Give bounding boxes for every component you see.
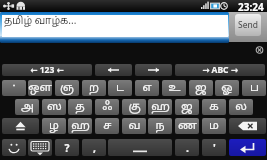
staticText: த <box>75 100 85 114</box>
button[interactable]: Hide keyboard <box>28 139 52 156</box>
button[interactable]: ந <box>148 118 172 134</box>
staticText: ← 123 ← <box>30 64 64 76</box>
staticText: ' <box>213 141 216 155</box>
staticText: ற <box>89 81 99 95</box>
staticText: ச <box>103 119 112 133</box>
button[interactable]: Send <box>235 14 261 36</box>
button[interactable]: வ <box>122 118 146 134</box>
button[interactable]: ஜ <box>175 99 199 115</box>
button[interactable]: → ABC → <box>175 64 265 76</box>
button[interactable]: க <box>202 99 226 115</box>
button[interactable]: ← 123 ← <box>2 64 92 76</box>
button[interactable]: தமிழ் வாழ்க... <box>0 12 229 43</box>
staticText: ந <box>155 119 165 133</box>
staticText: ஃ <box>102 100 113 114</box>
button[interactable]: , <box>82 139 106 156</box>
staticText: ஜ <box>195 81 207 95</box>
staticText: க <box>209 100 219 114</box>
staticText: கு <box>128 100 141 114</box>
button[interactable]: ஞ <box>55 80 79 96</box>
staticText: ஜ <box>181 100 193 114</box>
button[interactable]: ஹ <box>68 118 92 134</box>
button[interactable]: ' <box>202 139 226 156</box>
button[interactable]: ல <box>229 99 253 115</box>
staticText: ழ <box>49 119 59 133</box>
button[interactable]: ம <box>202 118 226 134</box>
staticText: 23:24 <box>238 0 264 12</box>
button[interactable]: Pulli <box>2 80 26 96</box>
button[interactable]: ஹ <box>148 99 172 115</box>
staticText: ல <box>235 100 247 114</box>
staticText: ட <box>116 81 124 95</box>
button[interactable]: எ <box>135 80 159 96</box>
staticText: உ <box>168 81 181 95</box>
button[interactable]: உ <box>162 80 186 96</box>
staticText: . <box>186 141 189 155</box>
button[interactable]: ஔ <box>28 80 52 96</box>
staticText: ஹ <box>151 100 170 114</box>
button[interactable]: ண <box>175 118 199 134</box>
staticText: வ <box>128 119 141 133</box>
button[interactable]: Previous <box>95 64 132 76</box>
staticText: எ <box>142 81 152 95</box>
button[interactable]: த <box>68 99 92 115</box>
staticText: , <box>93 141 96 155</box>
button[interactable]: Backspace <box>229 118 266 134</box>
button[interactable]: Emoji <box>2 139 26 156</box>
staticText: Send <box>238 19 258 31</box>
staticText: ஹ <box>71 119 90 133</box>
staticText: ஓ <box>221 81 233 95</box>
button[interactable]: Next <box>135 64 172 76</box>
staticText: ஔ <box>28 81 52 95</box>
button[interactable]: ஃ <box>95 99 119 115</box>
staticText: → ABC → <box>202 64 238 76</box>
button[interactable]: ட <box>108 80 132 96</box>
staticText: ம <box>209 119 219 133</box>
button[interactable]: ச <box>95 118 119 134</box>
button[interactable]: ஜ <box>189 80 213 96</box>
staticText: தமிழ் வாழ்க... <box>4 15 77 27</box>
button[interactable]: ற <box>82 80 106 96</box>
button[interactable]: Shift <box>2 118 39 134</box>
button[interactable]: Space <box>108 139 172 156</box>
button[interactable]: ப <box>242 80 266 96</box>
staticText: ண <box>178 119 197 133</box>
button[interactable]: ஓ <box>215 80 239 96</box>
button[interactable]: அ <box>15 99 39 115</box>
button[interactable]: Enter <box>229 139 266 156</box>
button[interactable]: ஸ <box>42 99 66 115</box>
button[interactable]: ழ <box>42 118 66 134</box>
button[interactable]: கு <box>122 99 146 115</box>
staticText: ப <box>250 81 259 95</box>
staticText: ஸ <box>47 100 62 114</box>
button[interactable]: . <box>175 139 199 156</box>
staticText: ஞ <box>60 81 74 95</box>
staticText: அ <box>21 100 34 114</box>
button[interactable]: ? <box>55 139 79 156</box>
button[interactable]: Close suggestion strip <box>253 44 266 56</box>
staticText: ? <box>64 141 70 155</box>
